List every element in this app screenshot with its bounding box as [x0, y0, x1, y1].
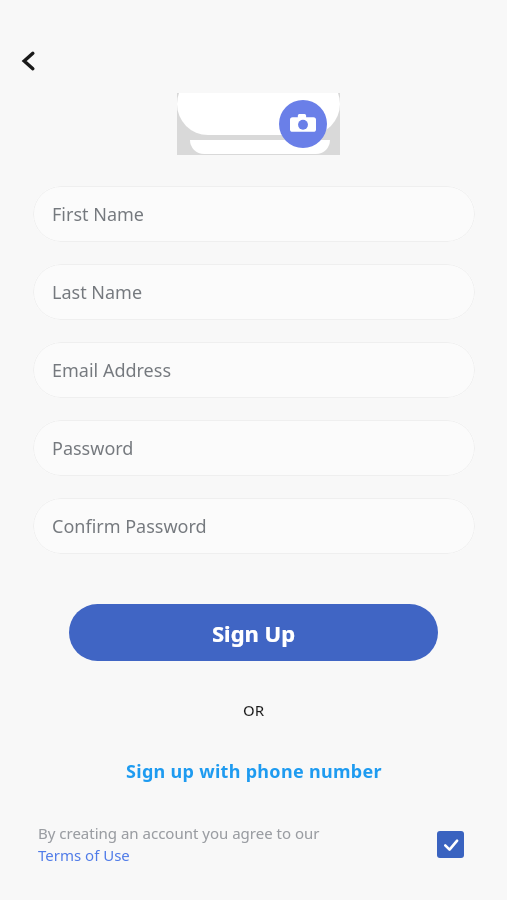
button[interactable]: Confirm Password	[33, 498, 475, 554]
button[interactable]: Sign up with phone number	[90, 752, 417, 790]
button[interactable]: First Name	[33, 186, 475, 242]
staticText: Email Address	[52, 358, 172, 383]
button[interactable]: Agree to Terms of Use	[430, 824, 470, 864]
button[interactable]: Back	[8, 40, 50, 82]
button[interactable]: Email Address	[33, 342, 475, 398]
button[interactable]: Last Name	[33, 264, 475, 320]
button[interactable]: Sign Up	[69, 604, 438, 661]
staticText: Last Name	[52, 280, 143, 305]
button[interactable]: Password	[33, 420, 475, 476]
staticText: Sign up with phone number	[126, 759, 382, 784]
staticText: By creating an account you agree to our	[38, 823, 320, 843]
staticText: Confirm Password	[52, 514, 207, 539]
button[interactable]: Terms of Use	[38, 845, 130, 865]
staticText: Terms of Use	[38, 845, 130, 865]
staticText: Password	[52, 436, 134, 461]
staticText: Sign Up	[212, 618, 296, 648]
staticText: OR	[243, 700, 265, 720]
staticText: First Name	[52, 202, 144, 227]
button[interactable]: Change profile photo	[279, 100, 327, 148]
